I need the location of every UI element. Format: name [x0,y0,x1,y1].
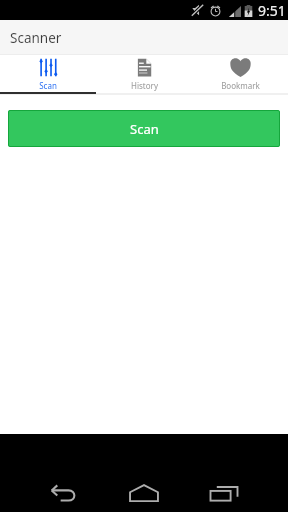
staticText: Scan [130,120,159,138]
button[interactable]: Home [120,478,168,508]
button[interactable]: Recent apps [200,477,248,507]
button[interactable]: Bookmark [192,55,288,91]
button[interactable]: Scan [8,110,280,147]
staticText: Scanner [10,29,62,47]
button[interactable]: History [96,55,192,91]
staticText: 9:51 [258,1,286,20]
button[interactable]: Scan [0,55,96,91]
staticText: History [131,80,158,91]
staticText: Bookmark [221,80,260,91]
staticText: Scan [39,80,57,91]
button[interactable]: Back [40,479,88,509]
